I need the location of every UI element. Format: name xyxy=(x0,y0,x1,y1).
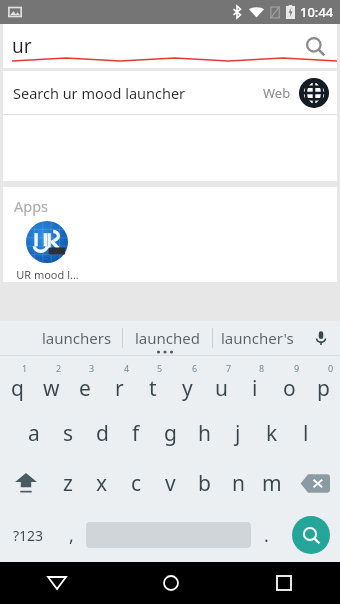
button[interactable]: . xyxy=(251,508,281,562)
button[interactable]: h xyxy=(187,408,221,458)
button[interactable]: m xyxy=(255,458,289,508)
staticText: launcher's xyxy=(221,328,294,348)
button[interactable]: 4 xyxy=(102,356,136,408)
staticText: 10:44 xyxy=(300,3,334,21)
button[interactable]: UR mood l... xyxy=(14,221,80,282)
staticText: h xyxy=(198,419,211,448)
staticText: y xyxy=(182,374,193,403)
button[interactable]: Search xyxy=(293,24,337,68)
button[interactable]: j xyxy=(221,408,255,458)
button[interactable]: 6 xyxy=(170,356,204,408)
staticText: k xyxy=(266,419,278,448)
staticText: ?123 xyxy=(13,526,44,545)
staticText: p xyxy=(317,374,330,403)
staticText: 4 xyxy=(124,362,130,374)
button[interactable]: Shift xyxy=(0,458,51,508)
button[interactable]: a xyxy=(17,408,51,458)
staticText: 7 xyxy=(226,362,232,374)
button[interactable]: ur xyxy=(3,24,337,68)
staticText: i xyxy=(252,374,258,403)
button[interactable]: k xyxy=(255,408,289,458)
staticText: q xyxy=(11,374,24,403)
staticText: w xyxy=(43,374,60,403)
staticText: f xyxy=(132,419,140,448)
staticText: d xyxy=(96,419,109,448)
button[interactable]: launcher's xyxy=(213,321,302,355)
button[interactable]: 8 xyxy=(238,356,272,408)
staticText: Apps xyxy=(14,196,49,216)
button[interactable]: b xyxy=(187,458,221,508)
staticText: t xyxy=(149,374,157,403)
staticText: j xyxy=(235,419,241,448)
staticText: . xyxy=(264,523,269,548)
button[interactable]: 1 xyxy=(0,356,34,408)
staticText: Search ur mood launcher xyxy=(13,83,186,103)
button[interactable]: Home xyxy=(114,562,227,604)
staticText: 3 xyxy=(89,362,95,374)
button[interactable]: g xyxy=(153,408,187,458)
staticText: v xyxy=(165,469,176,498)
button[interactable]: Search ur mood launcher xyxy=(3,71,337,114)
button[interactable]: x xyxy=(85,458,119,508)
staticText: z xyxy=(63,469,73,498)
staticText: 2 xyxy=(56,362,62,374)
button[interactable]: Back xyxy=(0,562,114,604)
staticText: UR mood l... xyxy=(16,267,79,282)
staticText: b xyxy=(198,469,211,498)
button[interactable]: c xyxy=(119,458,153,508)
staticText: launchers xyxy=(42,328,112,348)
button[interactable]: , xyxy=(56,508,86,562)
staticText: u xyxy=(215,374,228,403)
button[interactable]: 5 xyxy=(136,356,170,408)
button[interactable]: v xyxy=(153,458,187,508)
button[interactable]: 3 xyxy=(68,356,102,408)
button[interactable]: n xyxy=(221,458,255,508)
button[interactable]: 0 xyxy=(306,356,340,408)
button[interactable]: 7 xyxy=(204,356,238,408)
staticText: n xyxy=(232,469,245,498)
staticText: launched xyxy=(135,328,200,348)
button[interactable]: f xyxy=(119,408,153,458)
staticText: , xyxy=(69,523,74,548)
staticText: 6 xyxy=(192,362,198,374)
button[interactable]: Recent apps xyxy=(227,562,340,604)
staticText: c xyxy=(131,469,142,498)
staticText: l xyxy=(303,419,309,448)
button[interactable]: Backspace xyxy=(289,458,340,508)
staticText: 5 xyxy=(157,362,163,374)
button[interactable]: z xyxy=(51,458,85,508)
button[interactable]: l xyxy=(289,408,323,458)
staticText: ur xyxy=(12,33,32,59)
staticText: 8 xyxy=(259,362,265,374)
staticText: 9 xyxy=(294,362,300,374)
staticText: r xyxy=(115,374,124,403)
button[interactable]: 2 xyxy=(34,356,68,408)
staticText: e xyxy=(79,374,91,403)
button[interactable]: d xyxy=(85,408,119,458)
button[interactable]: Search xyxy=(292,516,330,554)
staticText: m xyxy=(262,469,282,498)
staticText: x xyxy=(96,469,108,498)
staticText: Web xyxy=(263,84,291,102)
staticText: 0 xyxy=(328,362,334,374)
staticText: o xyxy=(283,374,296,403)
button[interactable]: 9 xyxy=(272,356,306,408)
button[interactable]: Voice input xyxy=(302,321,340,355)
staticText: s xyxy=(63,419,74,448)
staticText: g xyxy=(164,419,177,448)
staticText: a xyxy=(28,419,40,448)
staticText: 1 xyxy=(22,362,28,374)
button[interactable]: s xyxy=(51,408,85,458)
button[interactable]: ?123 xyxy=(0,508,56,562)
button[interactable]: launched xyxy=(123,321,212,355)
button[interactable]: launchers xyxy=(32,321,122,355)
